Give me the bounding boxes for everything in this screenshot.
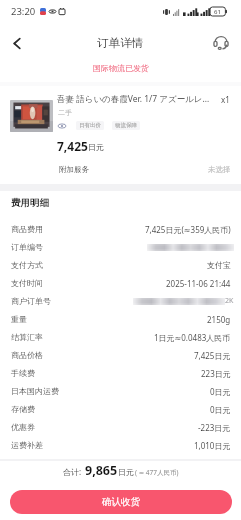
staticText: 合计:	[63, 466, 82, 477]
staticText: 订单编号	[11, 242, 43, 252]
button[interactable]: Back	[0, 27, 33, 60]
staticText: 商户订单号	[11, 296, 51, 306]
staticText: 支付宝	[207, 260, 231, 270]
staticText: 223日元	[201, 368, 231, 379]
button[interactable]: 确认收货	[10, 490, 232, 514]
staticText: 61	[214, 8, 221, 16]
button[interactable]: 支付时间	[0, 275, 241, 291]
staticText: 日元	[88, 142, 104, 152]
staticText: 存储费	[11, 404, 35, 414]
staticText: 吾妻 語らいの春霞Ver. 1/7 アズールレ…	[57, 93, 218, 105]
button[interactable]: 订单编号	[0, 239, 241, 255]
staticText: 二手	[58, 108, 72, 117]
staticText: 确认收货	[102, 496, 140, 508]
staticText: ( ≈ 477人民币)	[135, 468, 179, 477]
button[interactable]: 运费补差	[0, 437, 241, 453]
button[interactable]: 结算汇率	[0, 329, 241, 345]
button[interactable]: 手续费	[0, 365, 241, 381]
staticText: 日有出价	[79, 122, 101, 129]
staticText: 商品费用	[11, 224, 43, 234]
button[interactable]: 商品费用	[0, 221, 241, 237]
staticText: 日本国内运费	[11, 386, 59, 396]
staticText: 结算汇率	[11, 332, 43, 342]
staticText: 2150g	[207, 314, 231, 325]
button[interactable]: 商品价格	[0, 347, 241, 363]
button[interactable]: 支付方式	[0, 257, 241, 273]
staticText: 附加服务	[59, 165, 89, 174]
staticText: 商品价格	[11, 350, 43, 360]
staticText: x1	[221, 94, 230, 105]
staticText: 费用明细	[11, 197, 49, 209]
button[interactable]: Customer service	[211, 33, 231, 53]
staticText: 2025-11-06 21:44	[166, 278, 231, 289]
staticText: 未选择	[208, 165, 231, 174]
staticText: 9,865	[85, 462, 118, 479]
staticText: 手续费	[11, 368, 35, 378]
staticText: 1,010日元	[194, 440, 231, 451]
button[interactable]: 优惠券	[0, 419, 241, 435]
staticText: 7,425	[57, 138, 88, 154]
staticText: 物流保障	[115, 122, 137, 129]
staticText: 重量	[11, 314, 27, 324]
staticText: 日元	[118, 467, 134, 477]
staticText: 0日元	[210, 404, 231, 415]
button[interactable]: 商户订单号	[0, 293, 241, 309]
staticText: 国际物流已发货	[93, 63, 149, 73]
staticText: 2K	[225, 296, 234, 306]
staticText: 1日元≈0.0483人民币	[154, 332, 231, 343]
staticText: -223日元	[198, 422, 231, 433]
staticText: 支付时间	[11, 278, 43, 288]
staticText: 运费补差	[11, 440, 43, 450]
staticText: 订单详情	[97, 36, 144, 51]
button[interactable]: 重量	[0, 311, 241, 327]
staticText: 0日元	[210, 386, 231, 397]
button[interactable]: 存储费	[0, 401, 241, 417]
button[interactable]: 吾妻 語らいの春霞Ver. 1/7 アズールレ…	[0, 92, 241, 106]
staticText: 23:20	[11, 5, 36, 18]
button[interactable]: 日本国内运费	[0, 383, 241, 399]
staticText: 支付方式	[11, 260, 43, 270]
staticText: 7,425日元	[194, 350, 231, 361]
staticText: 优惠券	[11, 422, 35, 432]
button[interactable]: 附加服务	[0, 161, 241, 177]
staticText: 7,425日元(≈359人民币)	[145, 224, 231, 235]
